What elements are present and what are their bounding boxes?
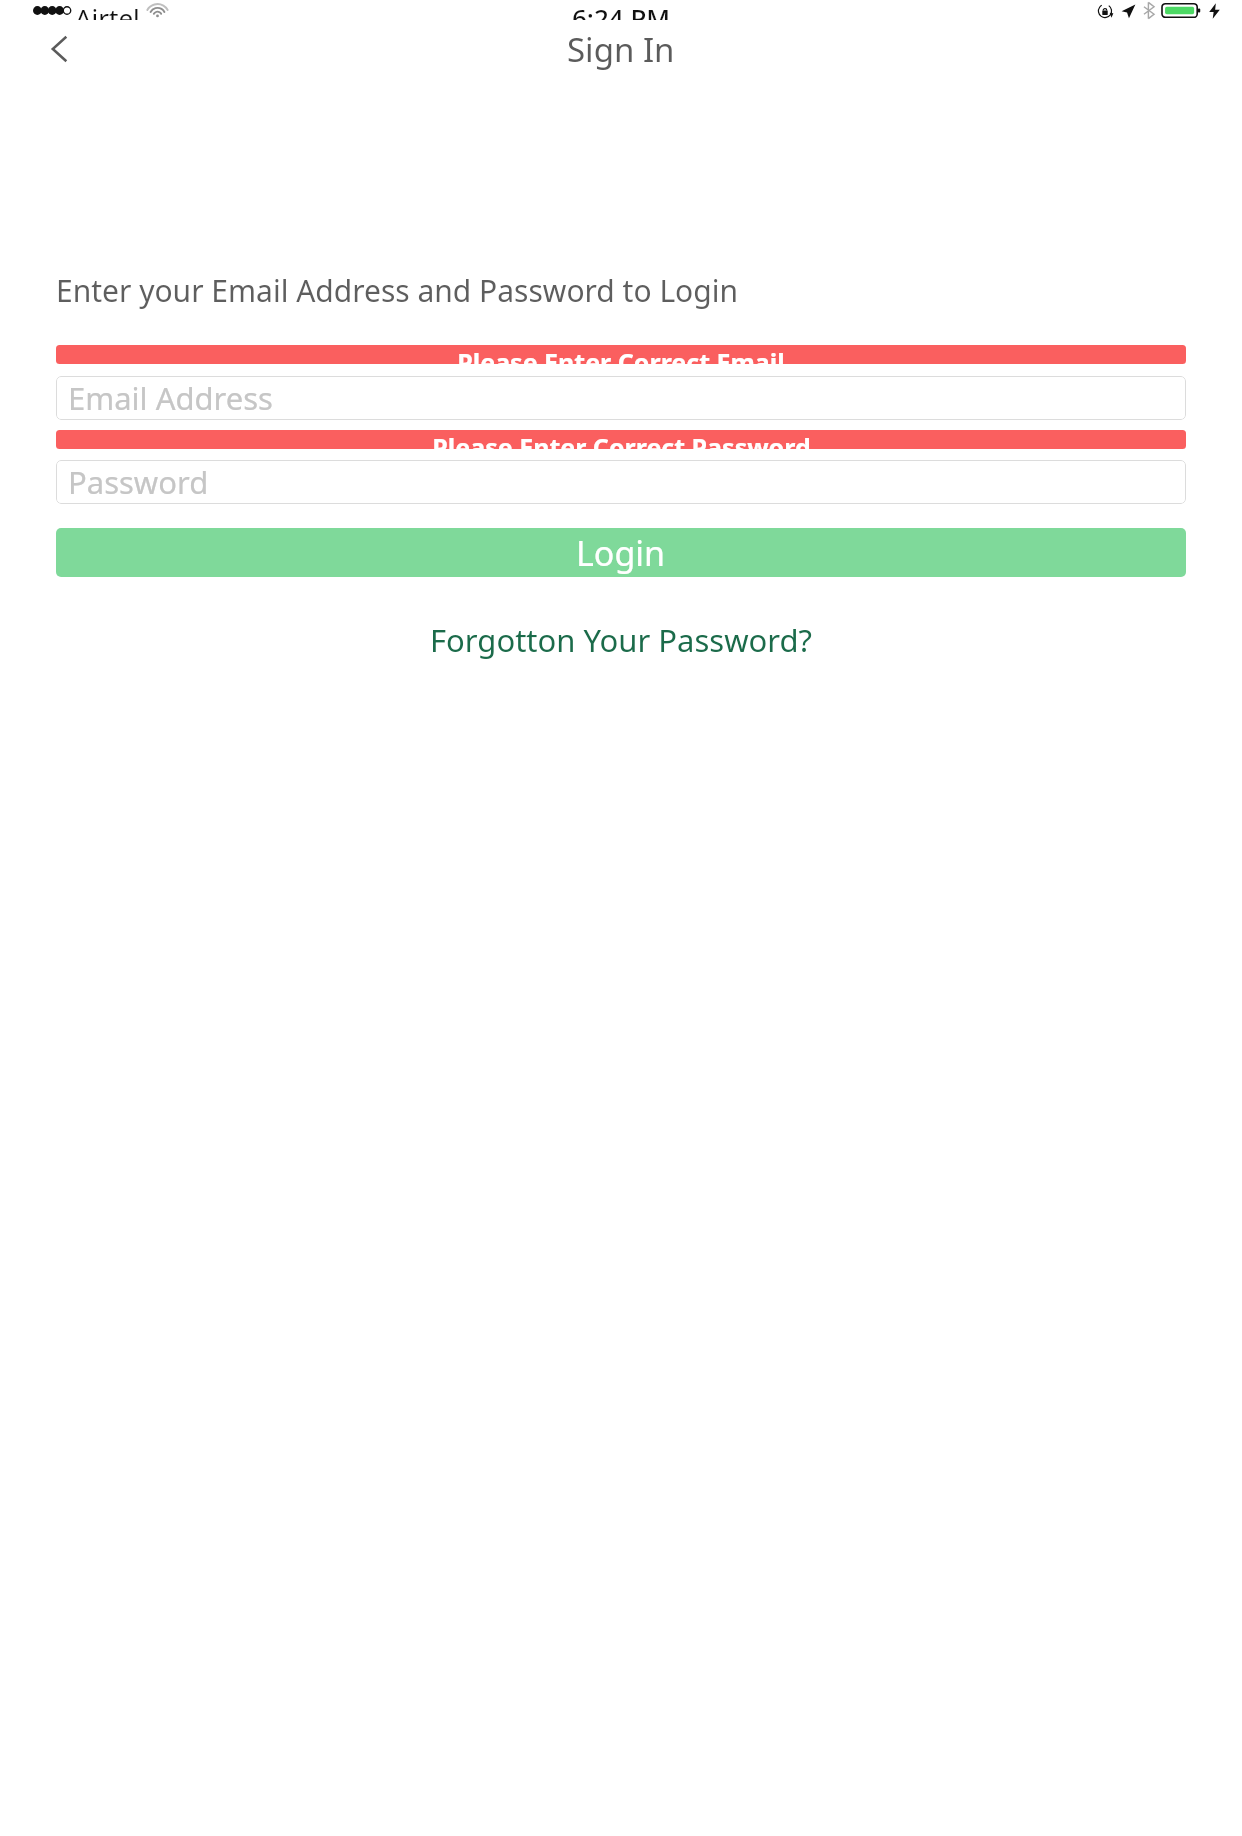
- staticText: Forgotton Your Password?: [430, 619, 812, 661]
- button[interactable]: Email Address: [56, 376, 1186, 420]
- staticText: Please Enter Correct Password: [432, 430, 811, 449]
- staticText: Sign In: [567, 27, 675, 72]
- button[interactable]: Login: [56, 528, 1186, 577]
- staticText: Enter your Email Address and Password to…: [56, 270, 738, 311]
- staticText: 6:24 PM: [572, 0, 671, 20]
- button[interactable]: Back: [40, 29, 80, 69]
- staticText: Airtel: [75, 0, 140, 20]
- button[interactable]: Forgotton Your Password?: [0, 610, 1242, 670]
- staticText: Please Enter Correct Email: [457, 345, 785, 364]
- staticText: Email Address: [68, 377, 273, 419]
- staticText: Login: [576, 530, 666, 576]
- staticText: Password: [68, 461, 209, 503]
- button[interactable]: Password: [56, 460, 1186, 504]
